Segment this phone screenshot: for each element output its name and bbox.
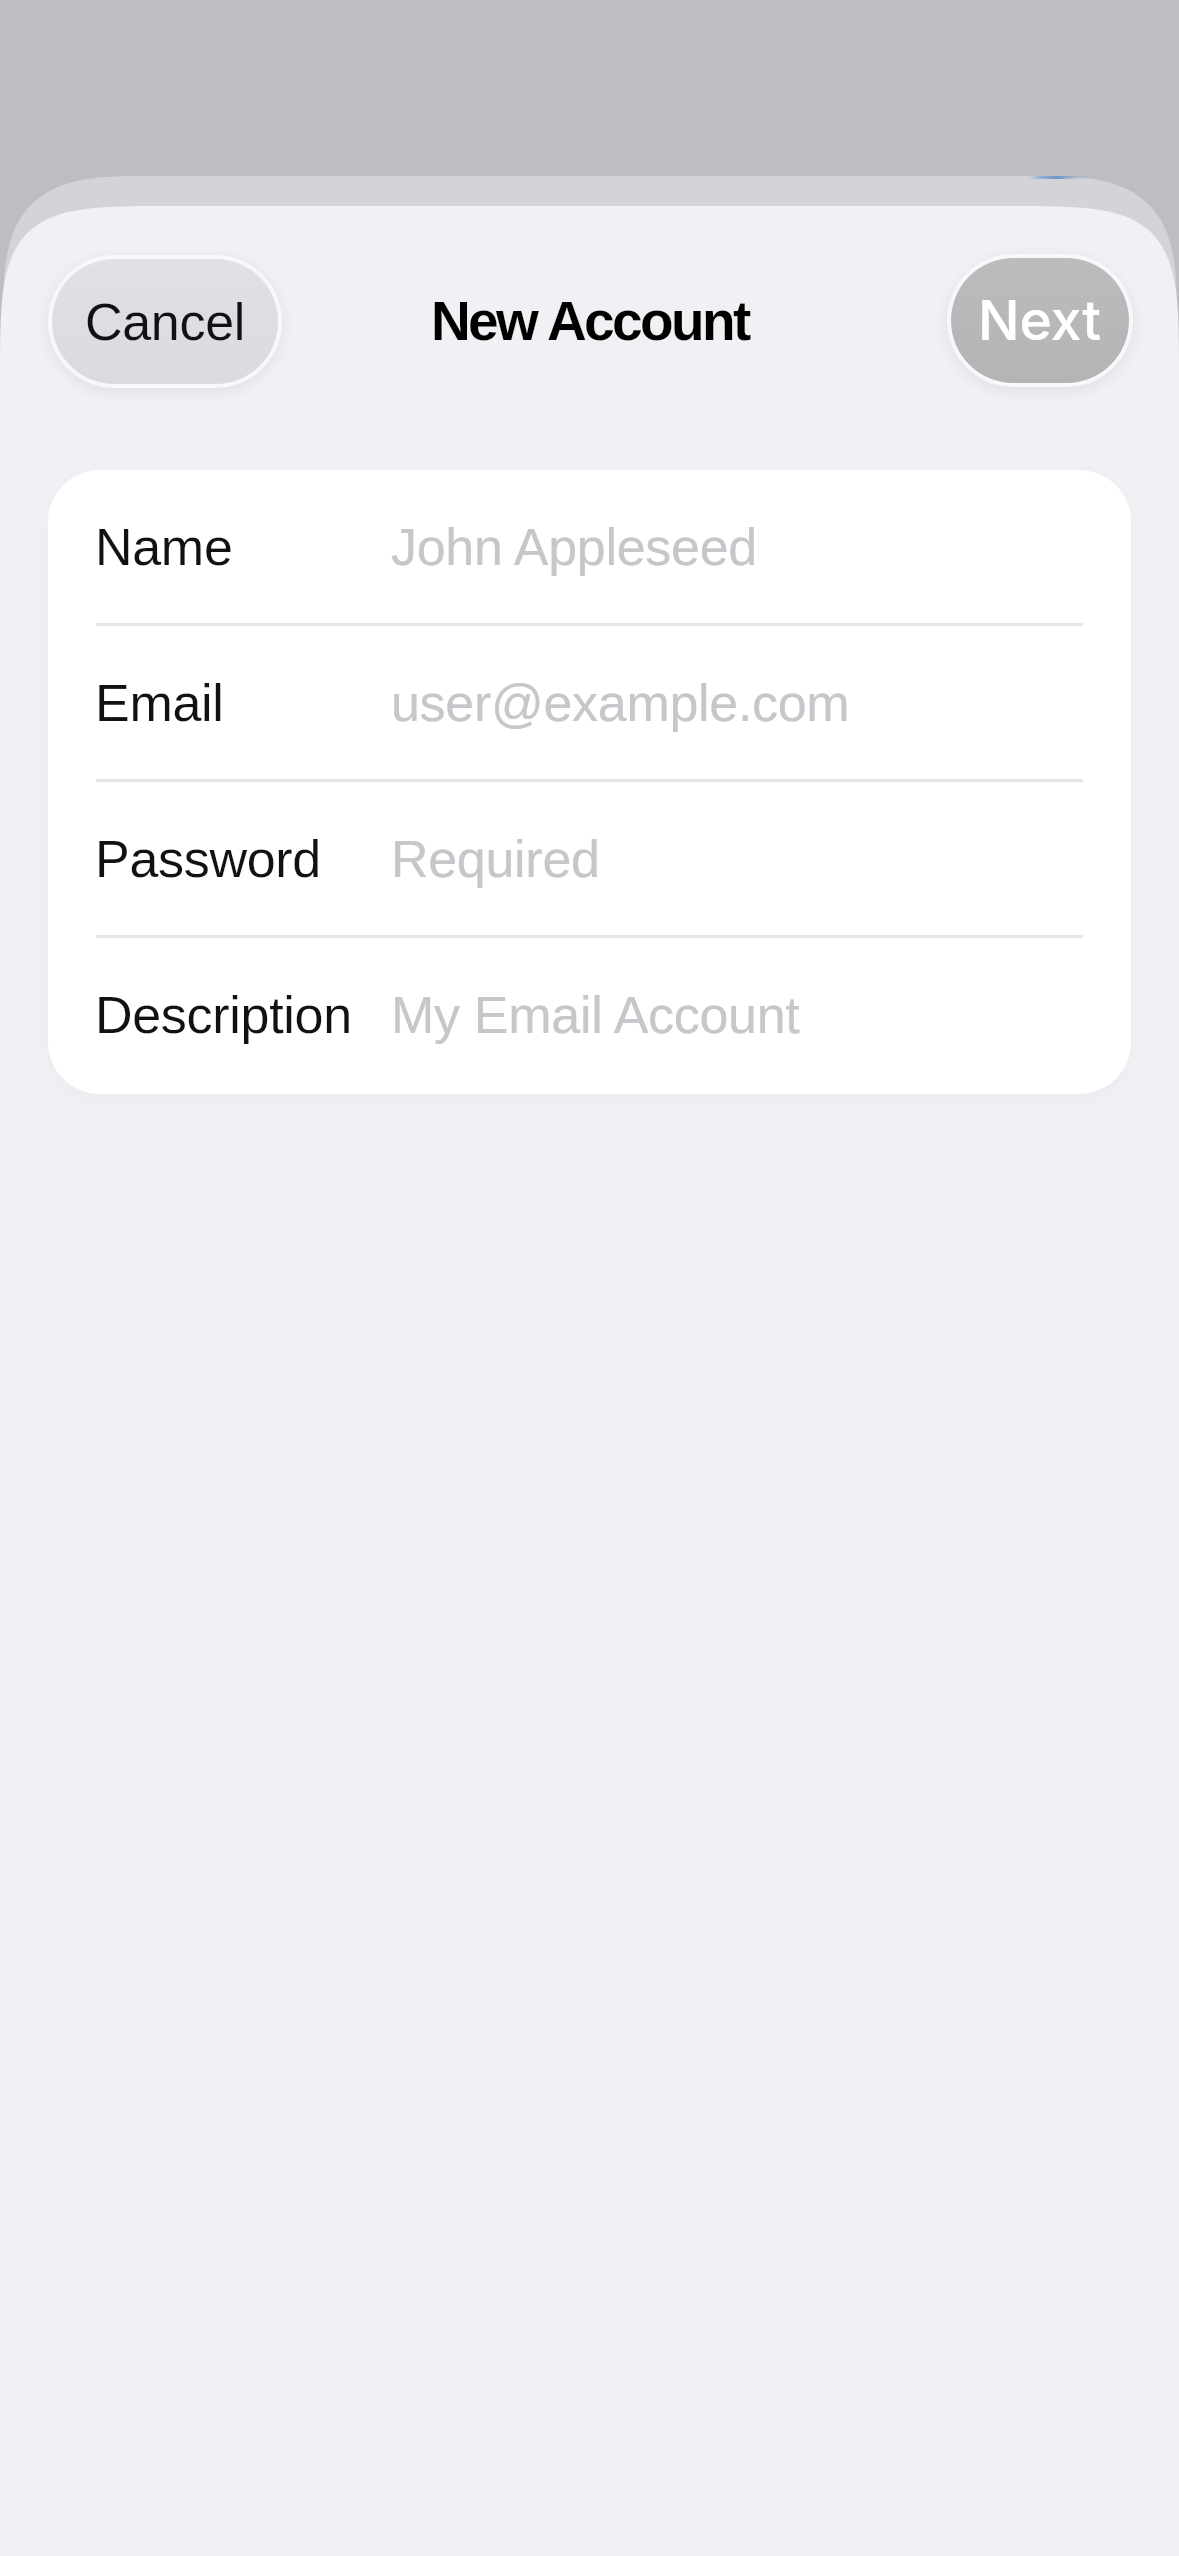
button[interactable]: Password	[48, 782, 1131, 938]
staticText: Password	[95, 830, 321, 888]
button[interactable]: Description	[48, 938, 1131, 1094]
staticText: Name	[95, 518, 233, 576]
staticText: Email	[95, 674, 224, 732]
staticText: Description	[95, 986, 352, 1044]
button[interactable]: Cancel	[48, 255, 282, 388]
staticText: user@example.com	[391, 674, 850, 732]
staticText: John Appleseed	[391, 518, 757, 576]
staticText: My Email Account	[391, 986, 800, 1044]
staticText: Next	[978, 287, 1102, 354]
staticText: New Account	[431, 290, 749, 351]
button[interactable]: Email	[48, 626, 1131, 782]
staticText: Required	[391, 830, 600, 888]
button[interactable]: Name	[48, 470, 1131, 626]
button[interactable]: Next	[947, 254, 1133, 387]
staticText: Cancel	[85, 293, 246, 351]
